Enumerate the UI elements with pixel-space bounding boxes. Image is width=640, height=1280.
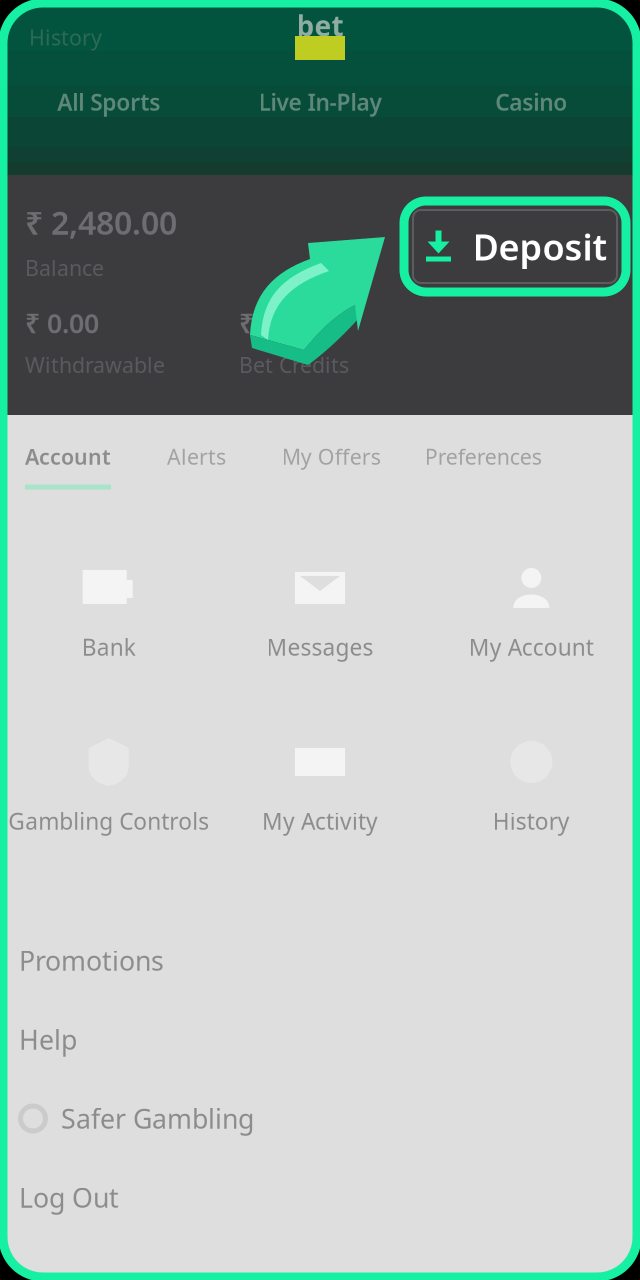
- staticText: Casino: [495, 87, 567, 117]
- staticText: Balance: [25, 253, 104, 282]
- staticText: ₹ 2,480.00: [25, 201, 177, 243]
- staticText: Bank: [82, 632, 136, 662]
- staticText: ₹ 0.00: [239, 305, 313, 341]
- button[interactable]: Deposit: [404, 201, 631, 292]
- staticText: Help: [19, 1022, 77, 1057]
- staticText: History: [493, 806, 570, 836]
- button[interactable]: Promotions: [3, 921, 637, 1000]
- staticText: Deposit: [472, 223, 607, 270]
- button[interactable]: History: [426, 732, 637, 836]
- staticText: Withdrawable: [25, 351, 165, 379]
- button[interactable]: Log Out: [3, 1158, 637, 1237]
- button[interactable]: My Activity: [214, 732, 426, 836]
- staticText: Bet Credits: [239, 351, 349, 379]
- button[interactable]: Messages: [214, 558, 426, 662]
- staticText: ₹ 0.00: [25, 305, 99, 341]
- button[interactable]: All Sports: [3, 73, 214, 131]
- button[interactable]: Preferences: [403, 428, 564, 489]
- staticText: Log Out: [19, 1180, 119, 1215]
- staticText: All Sports: [57, 87, 160, 117]
- staticText: Messages: [266, 632, 373, 662]
- staticText: Promotions: [19, 943, 164, 978]
- button[interactable]: Live In-Play: [214, 73, 426, 131]
- staticText: Preferences: [425, 442, 542, 471]
- staticText: Live In-Play: [258, 87, 381, 117]
- button[interactable]: Gambling Controls: [3, 732, 214, 836]
- button[interactable]: Account: [3, 428, 133, 489]
- staticText: Alerts: [167, 442, 226, 471]
- staticText: Safer Gambling: [61, 1101, 254, 1136]
- button[interactable]: Casino: [426, 73, 637, 131]
- staticText: Account: [25, 442, 111, 471]
- button[interactable]: My Offers: [260, 428, 403, 489]
- staticText: My Offers: [282, 442, 381, 471]
- button[interactable]: My Account: [426, 558, 637, 662]
- staticText: bet: [296, 7, 343, 44]
- button[interactable]: History: [11, 9, 120, 65]
- staticText: Gambling Controls: [8, 806, 209, 836]
- staticText: History: [29, 23, 102, 51]
- button[interactable]: Help: [3, 1000, 637, 1079]
- button[interactable]: Bank: [3, 558, 214, 662]
- staticText: My Activity: [262, 806, 378, 836]
- staticText: My Account: [469, 632, 594, 662]
- button[interactable]: Alerts: [133, 428, 260, 489]
- button[interactable]: Safer Gambling: [3, 1079, 637, 1158]
